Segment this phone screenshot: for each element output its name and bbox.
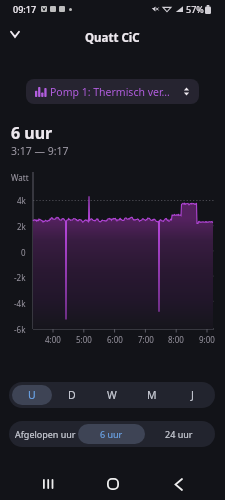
button[interactable]: W	[92, 385, 132, 405]
staticText: 0	[21, 247, 26, 258]
button[interactable]: 6 uur	[78, 424, 145, 444]
button[interactable]: 24 uur	[145, 424, 212, 444]
button[interactable]: Collapse	[1, 20, 29, 48]
button[interactable]: U	[12, 385, 52, 405]
staticText: 24 uur	[165, 428, 193, 440]
staticText: 5:00	[76, 334, 92, 345]
staticText: 9:00	[199, 334, 215, 345]
staticText: M	[147, 388, 157, 402]
staticText: Pomp 1: Thermisch ver…	[50, 85, 170, 99]
staticText: Afgelopen uur	[15, 428, 76, 440]
button[interactable]: M	[132, 385, 172, 405]
staticText: 6:00	[107, 334, 123, 345]
button[interactable]: J	[172, 385, 212, 405]
staticText: J	[191, 388, 194, 402]
staticText: -4k	[14, 298, 26, 309]
staticText: 8:00	[168, 334, 184, 345]
staticText: 6 uur	[11, 122, 53, 144]
button[interactable]: Afgelopen uur	[12, 424, 78, 444]
staticText: D	[68, 388, 76, 402]
staticText: Quatt CiC	[85, 30, 140, 46]
staticText: 7:00	[138, 334, 154, 345]
staticText: U	[28, 388, 36, 402]
staticText: -6k	[14, 324, 26, 335]
staticText: 57%	[186, 3, 204, 15]
staticText: 2k	[17, 221, 26, 232]
button[interactable]: D	[52, 385, 92, 405]
button[interactable]: Pomp 1: Thermisch ver…	[26, 79, 199, 104]
staticText: 6 uur	[100, 428, 123, 440]
staticText: 3:17 — 9:17	[11, 144, 69, 158]
button[interactable]: Recents	[29, 468, 65, 500]
staticText: W	[107, 388, 117, 402]
button[interactable]: Back	[160, 468, 196, 500]
staticText: Watt	[11, 172, 29, 183]
staticText: 4:00	[45, 334, 61, 345]
staticText: 4k	[17, 195, 26, 206]
button[interactable]: Home	[95, 468, 131, 500]
staticText: 09:17	[13, 3, 37, 15]
staticText: -2k	[14, 272, 26, 283]
